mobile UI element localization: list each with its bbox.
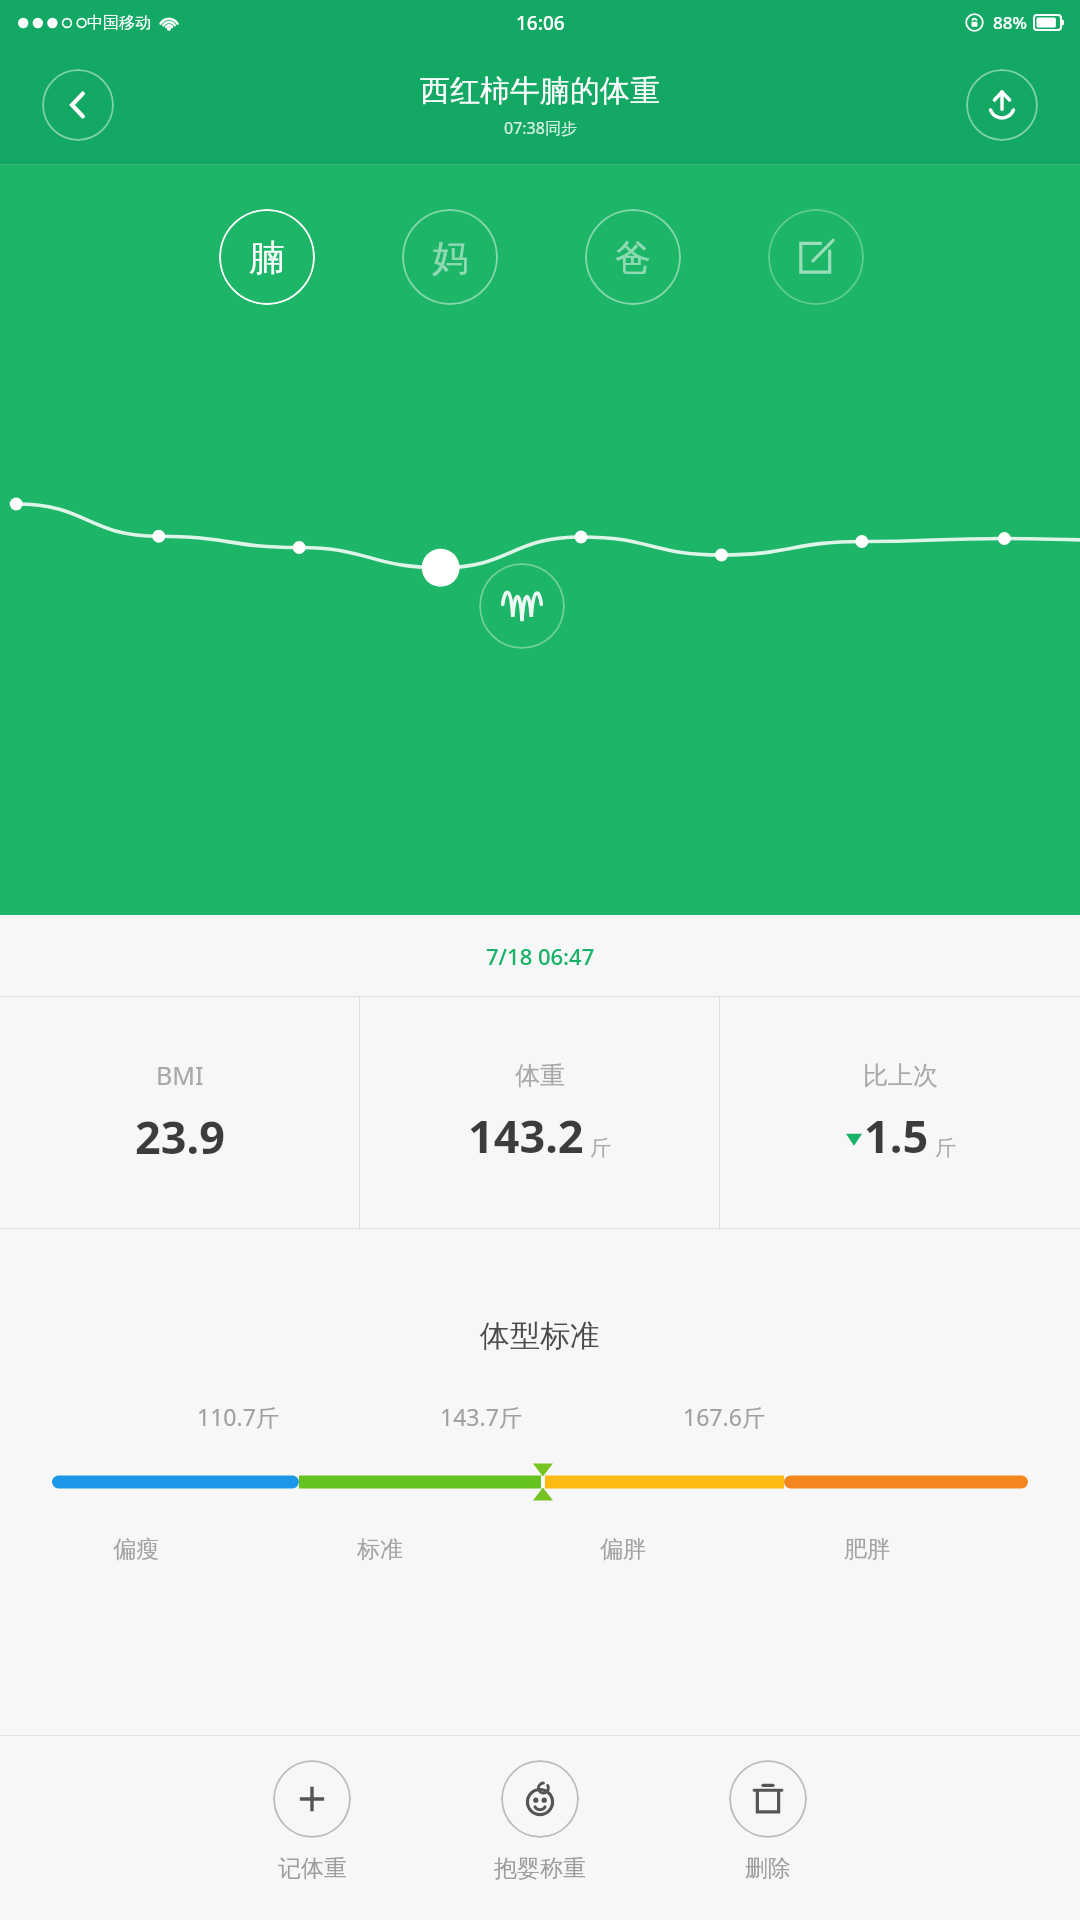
button[interactable]: Back [42, 69, 114, 141]
staticText: BMI [156, 1058, 204, 1092]
staticText: 斤 [935, 1135, 956, 1161]
button[interactable]: 体重 [360, 997, 719, 1228]
staticText: 斤 [590, 1135, 611, 1161]
staticText: 爸 [615, 235, 651, 280]
staticText: 167.6斤 [683, 1401, 765, 1432]
staticText: 143.7斤 [440, 1401, 522, 1432]
staticText: 23.9 [135, 1106, 225, 1167]
staticText: 偏胖 [600, 1535, 646, 1564]
button[interactable]: 抱婴称重 [460, 1736, 620, 1883]
staticText: 记体重 [278, 1854, 347, 1883]
button[interactable]: 妈 [402, 209, 498, 305]
staticText: 比上次 [863, 1060, 938, 1091]
staticText: 妈 [432, 235, 468, 280]
staticText: 肥胖 [844, 1535, 890, 1564]
staticText: 16:06 [516, 10, 565, 36]
staticText: 标准 [357, 1535, 403, 1564]
staticText: 抱婴称重 [494, 1854, 586, 1883]
staticText: 偏瘦 [113, 1535, 159, 1564]
button[interactable]: 比上次 [720, 997, 1080, 1228]
button[interactable]: BMI [0, 997, 359, 1228]
button[interactable]: Edit members [768, 209, 864, 305]
button[interactable]: 爸 [585, 209, 681, 305]
staticText: 西红柿牛腩的体重 [420, 72, 660, 110]
staticText: 1.5 [864, 1105, 929, 1166]
staticText: 腩 [249, 235, 285, 280]
button[interactable]: Share [966, 69, 1038, 141]
staticText: 删除 [745, 1854, 791, 1883]
button[interactable]: 删除 [688, 1736, 848, 1883]
staticText: 07:38同步 [504, 117, 577, 139]
staticText: 143.2 [468, 1105, 584, 1166]
staticText: 体型标准 [0, 1317, 1080, 1355]
staticText: 110.7斤 [197, 1401, 279, 1432]
staticText: 中国移动 [87, 13, 151, 33]
staticText: 88% [993, 11, 1027, 34]
staticText: 7/18 06:47 [486, 941, 595, 971]
button[interactable]: 记体重 [232, 1736, 392, 1883]
staticText: 体重 [515, 1060, 565, 1091]
button[interactable]: Body composition [479, 563, 565, 649]
button[interactable]: 腩 [219, 209, 315, 305]
